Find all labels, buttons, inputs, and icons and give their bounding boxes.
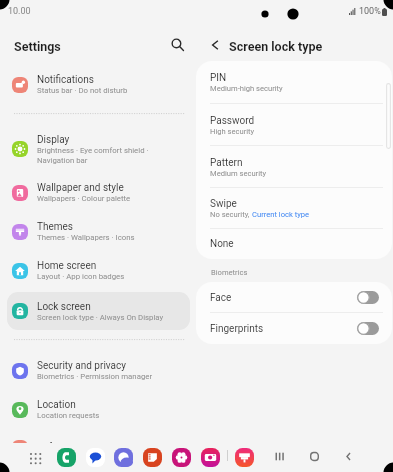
button[interactable]: Display bbox=[7, 125, 190, 173]
button[interactable]: Gallery bbox=[172, 448, 191, 467]
staticText: PIN bbox=[210, 72, 227, 84]
button[interactable]: None bbox=[196, 229, 392, 259]
button[interactable]: Themes bbox=[7, 212, 190, 251]
staticText: Layout · App icon badges bbox=[37, 272, 125, 281]
button[interactable]: Home screen bbox=[7, 251, 190, 290]
button[interactable]: Themes bbox=[235, 448, 254, 467]
staticText: No security, bbox=[210, 210, 252, 219]
button[interactable]: Camera bbox=[201, 448, 220, 467]
staticText: Pattern bbox=[210, 157, 243, 169]
staticText: Themes bbox=[37, 221, 74, 233]
staticText: Notifications bbox=[37, 74, 94, 86]
staticText: Wallpaper and style bbox=[37, 182, 124, 194]
button[interactable]: Location bbox=[7, 390, 190, 429]
staticText: Home screen bbox=[37, 260, 97, 272]
button[interactable]: Pattern bbox=[196, 146, 392, 188]
staticText: Location requests bbox=[37, 411, 100, 420]
button[interactable]: PIN bbox=[196, 61, 392, 104]
staticText: Settings bbox=[14, 39, 61, 54]
button[interactable]: Back bbox=[339, 447, 358, 466]
staticText: Themes · Wallpapers · Icons bbox=[37, 233, 135, 242]
button[interactable]: Notes bbox=[143, 448, 162, 467]
staticText: Location bbox=[37, 399, 76, 411]
button[interactable]: Face bbox=[196, 282, 392, 313]
button[interactable]: Wallpaper and style bbox=[7, 173, 190, 212]
staticText: Safety and emergency bbox=[37, 442, 136, 454]
staticText: Medium-high security bbox=[210, 84, 283, 93]
staticText: 10.00 bbox=[8, 6, 31, 17]
staticText: Fingerprints bbox=[210, 323, 264, 335]
staticText: Brightness · Eye comfort shield · Naviga… bbox=[37, 146, 149, 165]
button[interactable]: Apps bbox=[26, 449, 44, 467]
button[interactable]: Notifications bbox=[7, 65, 190, 104]
button[interactable]: Phone bbox=[57, 448, 76, 467]
button[interactable]: Recents bbox=[270, 447, 289, 466]
button[interactable]: Safety and emergency bbox=[7, 428, 190, 467]
button[interactable]: Swipe bbox=[196, 188, 392, 229]
staticText: Biometrics · Permission manager bbox=[37, 372, 153, 381]
staticText: Wallpapers · Colour palette bbox=[37, 194, 131, 203]
button[interactable]: Password bbox=[196, 104, 392, 146]
staticText: Lock screen bbox=[37, 301, 91, 313]
staticText: Status bar · Do not disturb bbox=[37, 86, 128, 95]
staticText: Screen lock type bbox=[229, 39, 323, 54]
staticText: Screen lock type · Always On Display bbox=[37, 313, 164, 322]
staticText: Medium security bbox=[210, 169, 267, 178]
button[interactable]: Messages bbox=[86, 448, 105, 467]
staticText: High security bbox=[210, 127, 255, 136]
button[interactable]: Internet bbox=[114, 448, 133, 467]
staticText: Face bbox=[210, 292, 232, 304]
button[interactable]: Lock screen bbox=[7, 292, 190, 330]
staticText: None bbox=[210, 238, 234, 250]
staticText: Password bbox=[210, 115, 255, 127]
staticText: 100% bbox=[359, 6, 381, 17]
button[interactable]: Security and privacy bbox=[7, 351, 190, 390]
button[interactable]: Search bbox=[166, 33, 189, 56]
staticText: Swipe bbox=[210, 198, 237, 210]
staticText: Biometrics bbox=[211, 268, 248, 277]
button[interactable]: Back bbox=[203, 33, 226, 56]
button[interactable]: Home bbox=[305, 447, 324, 466]
staticText: Security and privacy bbox=[37, 360, 126, 372]
staticText: Current lock type bbox=[252, 210, 310, 219]
button[interactable]: Fingerprints bbox=[196, 313, 392, 344]
staticText: Display bbox=[37, 134, 70, 146]
